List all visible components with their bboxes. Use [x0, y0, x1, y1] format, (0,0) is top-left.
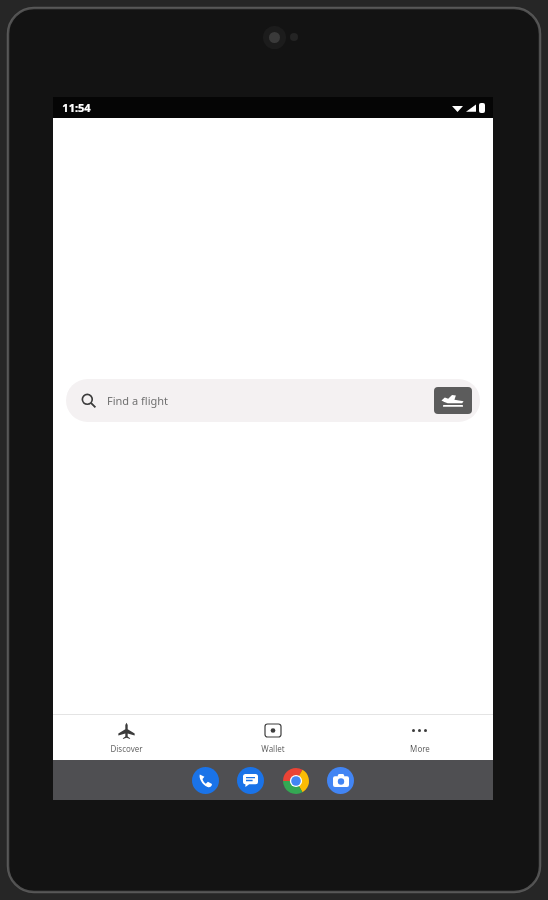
- button[interactable]: Camera: [327, 767, 354, 794]
- button[interactable]: More: [346, 717, 493, 758]
- staticText: 11:54: [62, 100, 91, 115]
- staticText: Wallet: [261, 743, 285, 754]
- staticText: Find a flight: [107, 393, 168, 408]
- button[interactable]: Discover: [53, 717, 199, 758]
- button[interactable]: Messages: [237, 767, 264, 794]
- button[interactable]: Chrome: [282, 767, 309, 794]
- staticText: More: [410, 743, 430, 754]
- button[interactable]: Wallet: [199, 717, 346, 758]
- button[interactable]: Find a flight: [66, 379, 480, 422]
- staticText: Discover: [110, 743, 143, 754]
- button[interactable]: Phone: [192, 767, 219, 794]
- button[interactable]: Flight status: [434, 387, 472, 414]
